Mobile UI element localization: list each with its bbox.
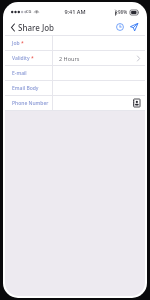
- button[interactable]: Choose contact: [133, 99, 140, 107]
- button[interactable]: E-mail: [5, 66, 145, 80]
- staticText: *: [21, 40, 24, 47]
- button[interactable]: Send: [128, 21, 140, 33]
- button[interactable]: Back: [5, 20, 59, 35]
- staticText: Email Body: [12, 85, 39, 92]
- other: Back: [11, 24, 15, 31]
- staticText: Validity: [12, 55, 30, 62]
- staticText: 2 Hours: [59, 55, 80, 62]
- staticText: 98%: [118, 9, 128, 15]
- button[interactable]: Phone Number: [5, 96, 145, 110]
- button[interactable]: History: [114, 21, 126, 33]
- button[interactable]: Validity: [5, 51, 145, 65]
- staticText: Share Job: [18, 22, 55, 33]
- staticText: Job: [12, 40, 20, 47]
- staticText: E-mail: [12, 70, 27, 77]
- staticText: *: [31, 55, 34, 62]
- staticText: Phone Number: [12, 100, 49, 107]
- button[interactable]: Email Body: [5, 81, 145, 95]
- staticText: CG: [26, 9, 32, 14]
- button[interactable]: Job: [5, 36, 145, 50]
- staticText: 9:41 AM: [64, 8, 86, 15]
